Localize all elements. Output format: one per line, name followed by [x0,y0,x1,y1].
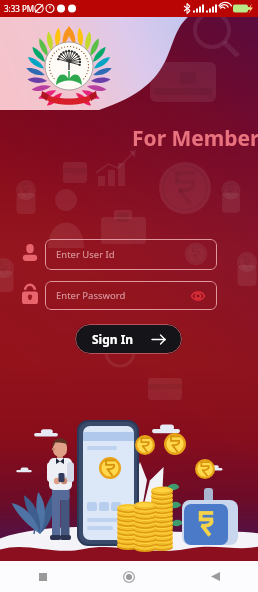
staticText: Enter Password [56,289,126,302]
button[interactable]: Sign In [75,324,182,354]
staticText: For Member [132,124,258,153]
button[interactable]: Home [86,561,172,592]
staticText: Sign In [92,331,134,347]
other: User [22,244,38,261]
other: Show password [191,291,205,301]
button[interactable]: Back [172,561,258,592]
button[interactable]: Enter User Id [45,239,217,270]
staticText: 3:33 PM [4,3,35,14]
button[interactable]: Recent apps [0,561,86,592]
other: Password [22,284,38,304]
staticText: Enter User Id [56,248,115,261]
button[interactable]: Enter Password [45,281,217,310]
